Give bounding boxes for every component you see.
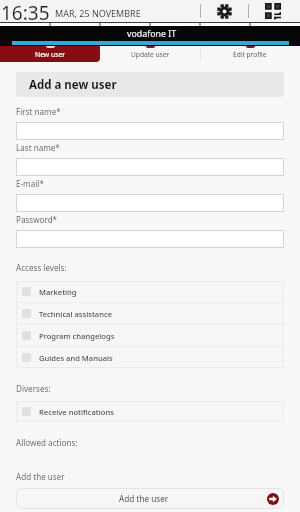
staticText: Diverses: (16, 383, 51, 394)
button[interactable]: Recent apps (249, 0, 296, 22)
staticText: Edit profile (233, 50, 267, 59)
staticText: Program changelogs (39, 331, 115, 341)
button[interactable]: New user (0, 46, 100, 62)
button[interactable]: Guides and Manuals (16, 347, 284, 368)
staticText: vodafone IT (127, 28, 177, 40)
button[interactable] (16, 158, 284, 176)
button[interactable]: Edit profile (200, 46, 300, 62)
button[interactable]: Receive notifications (16, 401, 284, 422)
button[interactable]: Program changelogs (16, 325, 284, 346)
staticText: Last name* (16, 142, 60, 153)
staticText: Access levels: (16, 262, 67, 273)
staticText: New user (35, 50, 66, 59)
button[interactable]: Update user (100, 46, 200, 62)
staticText: E-mail* (16, 178, 44, 189)
staticText: Receive notifications (39, 407, 114, 417)
button[interactable]: Marketing (16, 281, 284, 302)
staticText: Marketing (39, 287, 77, 297)
button[interactable] (16, 230, 284, 248)
staticText: Guides and Manuals (39, 353, 113, 363)
staticText: Allowed actions: (16, 437, 78, 448)
button[interactable]: Technical assistance (16, 303, 284, 324)
staticText: First name* (16, 106, 61, 117)
staticText: 16:35 (1, 0, 50, 22)
staticText: Technical assistance (39, 309, 113, 319)
button[interactable]: Settings (201, 0, 248, 22)
button[interactable] (16, 122, 284, 140)
staticText: MAR, 25 NOVEMBRE (55, 7, 141, 19)
staticText: Add a new user (29, 77, 117, 93)
staticText: Add the user (119, 493, 169, 504)
staticText: Add the user (16, 471, 65, 482)
staticText: Update user (131, 50, 170, 59)
button[interactable] (16, 194, 284, 212)
button[interactable]: Add the user (16, 488, 284, 509)
staticText: Password* (16, 214, 58, 225)
